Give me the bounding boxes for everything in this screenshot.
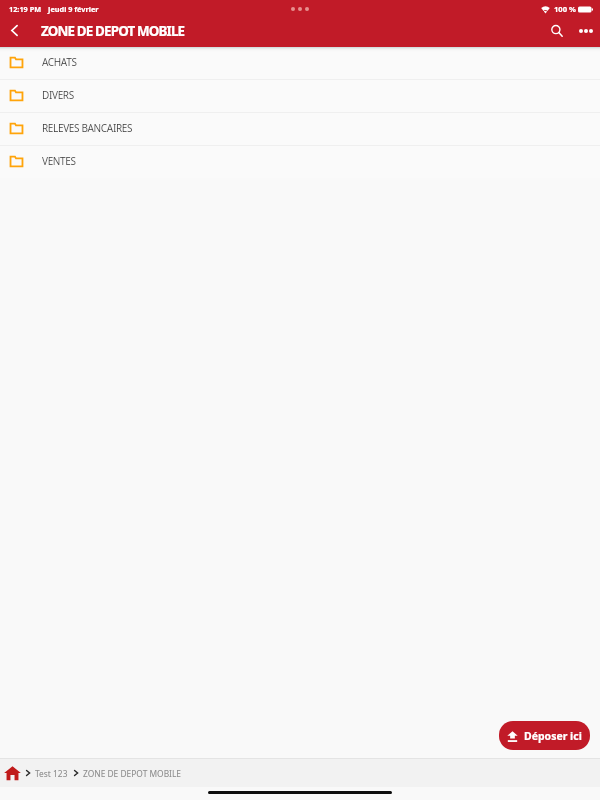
button[interactable]: More options bbox=[571, 18, 600, 47]
staticText: ZONE DE DEPOT MOBILE bbox=[83, 768, 182, 779]
staticText: Jeudi 9 février bbox=[48, 4, 99, 14]
staticText: Test 123 bbox=[35, 768, 68, 779]
button[interactable]: ACHATS bbox=[0, 47, 600, 79]
staticText: 12:19 PM bbox=[9, 4, 42, 14]
button[interactable]: RELEVES BANCAIRES bbox=[0, 113, 600, 145]
button[interactable]: VENTES bbox=[0, 146, 600, 178]
staticText: VENTES bbox=[42, 154, 76, 168]
staticText: ZONE DE DEPOT MOBILE bbox=[41, 22, 185, 40]
button[interactable]: Search bbox=[542, 18, 571, 47]
staticText: RELEVES BANCAIRES bbox=[42, 121, 133, 135]
staticText: DIVERS bbox=[42, 88, 74, 102]
button[interactable]: Home bbox=[2, 763, 22, 783]
button[interactable]: Déposer ici bbox=[499, 721, 590, 750]
staticText: Déposer ici bbox=[524, 729, 582, 743]
button[interactable]: DIVERS bbox=[0, 80, 600, 112]
staticText: ACHATS bbox=[42, 55, 77, 69]
staticText: 100 % bbox=[554, 4, 576, 14]
button[interactable]: Test 123 bbox=[35, 768, 68, 779]
button[interactable]: Back bbox=[0, 18, 29, 47]
